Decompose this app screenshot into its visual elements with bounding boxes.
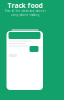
staticText: Time all the meals and calories [4,9,45,13]
staticText: using calorie tracking [10,13,39,17]
staticText: Track food [7,1,42,10]
